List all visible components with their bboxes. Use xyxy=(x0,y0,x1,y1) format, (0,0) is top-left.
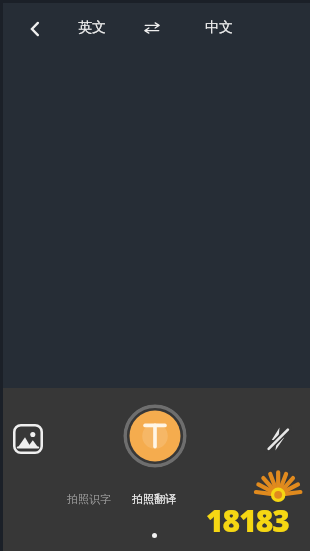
button[interactable]: 中文 xyxy=(197,14,241,42)
button[interactable]: 拍照识字 xyxy=(61,488,117,510)
button[interactable]: Back xyxy=(21,15,49,43)
staticText: 拍照识字 xyxy=(67,492,111,506)
button[interactable]: 拍照翻译 xyxy=(126,488,182,510)
staticText: 拍照翻译 xyxy=(132,492,176,506)
button[interactable]: Flash off xyxy=(265,426,291,452)
button[interactable]: Capture photo to translate xyxy=(123,404,187,468)
button[interactable]: Open gallery xyxy=(13,424,43,454)
button[interactable]: 英文 xyxy=(70,14,114,42)
staticText: 英文 xyxy=(78,19,106,37)
staticText: 中文 xyxy=(205,19,233,37)
button[interactable]: Swap languages xyxy=(139,15,165,41)
staticText: 18183 xyxy=(206,500,289,541)
